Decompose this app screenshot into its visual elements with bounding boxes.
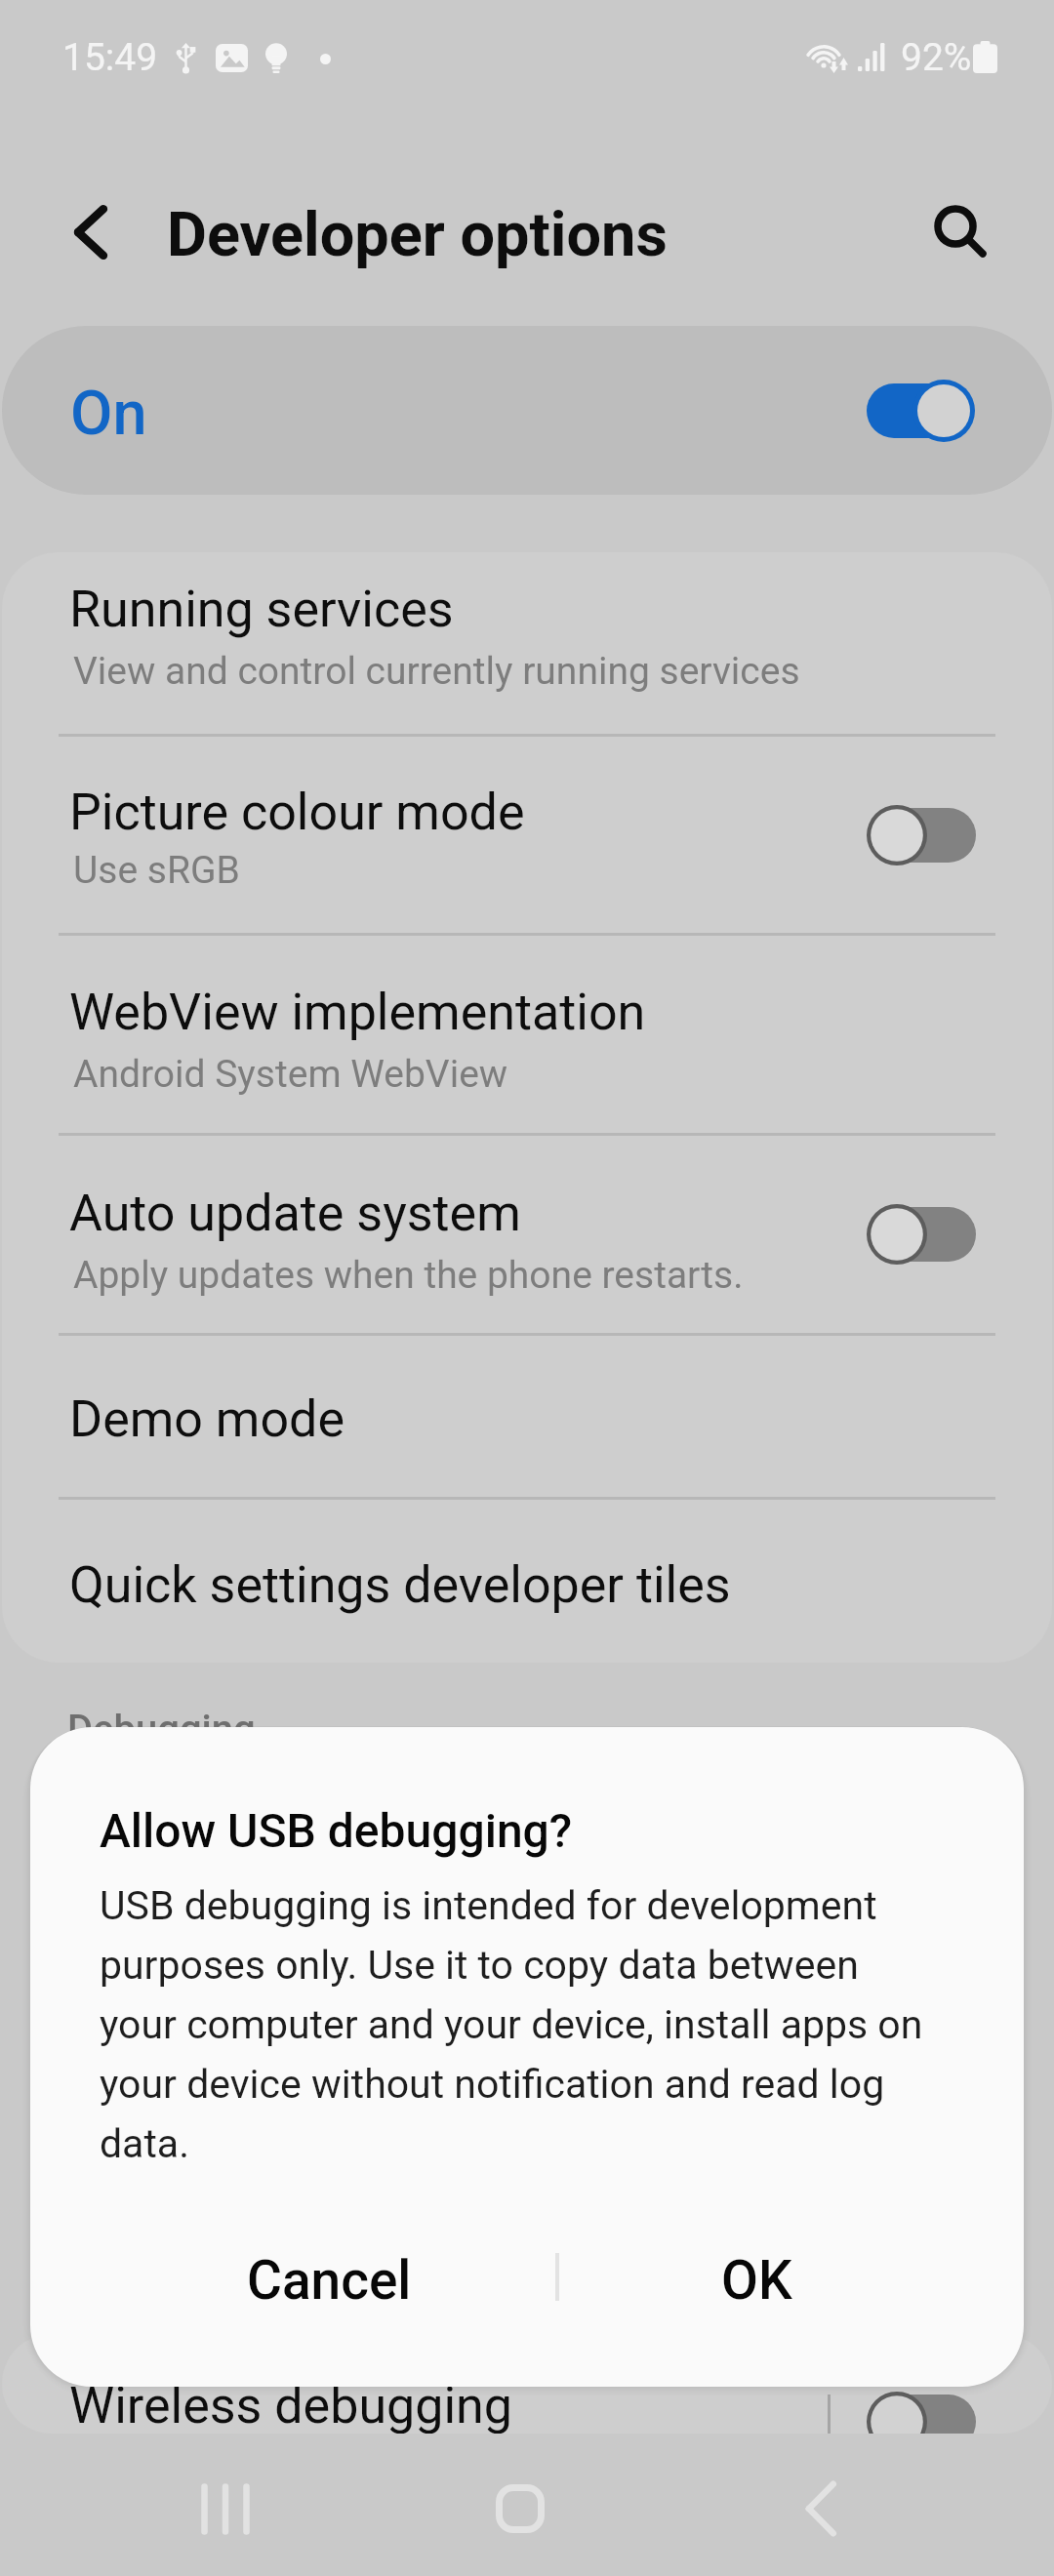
- staticText: 92%: [901, 35, 972, 80]
- staticText: Demo mode: [69, 1389, 345, 1449]
- staticText: Wireless debugging: [69, 2376, 513, 2434]
- staticText: Cancel: [247, 2249, 412, 2312]
- staticText: 15:49: [62, 35, 158, 80]
- button[interactable]: Search: [912, 182, 1007, 278]
- staticText: USB debugging is intended for developmen…: [100, 1882, 945, 2167]
- button[interactable]: Running services: [2, 552, 1052, 734]
- staticText: Developer options: [167, 199, 668, 271]
- button[interactable]: On: [2, 326, 1052, 495]
- button[interactable]: Cancel: [101, 2226, 558, 2335]
- button[interactable]: Picture colour mode: [2, 737, 1052, 933]
- button[interactable]: Wireless debugging: [2, 2334, 1052, 2434]
- button[interactable]: Home: [466, 2454, 575, 2563]
- staticText: Android System WebView: [73, 1052, 508, 1097]
- staticText: WebView implementation: [69, 983, 646, 1042]
- staticText: OK: [721, 2249, 792, 2312]
- button[interactable]: Auto update system: [2, 1136, 1052, 1333]
- staticText: Apply updates when the phone restarts.: [73, 1253, 744, 1298]
- staticText: Picture colour mode: [69, 783, 525, 842]
- button[interactable]: Quick settings developer tiles: [2, 1500, 1052, 1663]
- staticText: On: [70, 378, 147, 450]
- button[interactable]: Navigate up: [43, 184, 139, 280]
- button[interactable]: Back: [766, 2454, 875, 2563]
- staticText: Auto update system: [69, 1184, 521, 1243]
- staticText: Allow USB debugging?: [100, 1803, 573, 1858]
- button[interactable]: Recent apps: [171, 2454, 280, 2563]
- button[interactable]: WebView implementation: [2, 936, 1052, 1133]
- button[interactable]: OK: [560, 2226, 953, 2335]
- staticText: Debugging: [67, 1707, 256, 1752]
- staticText: Quick settings developer tiles: [69, 1555, 731, 1615]
- staticText: Running services: [69, 580, 454, 639]
- button[interactable]: Demo mode: [2, 1336, 1052, 1497]
- staticText: Use sRGB: [73, 848, 240, 893]
- staticText: View and control currently running servi…: [73, 649, 800, 694]
